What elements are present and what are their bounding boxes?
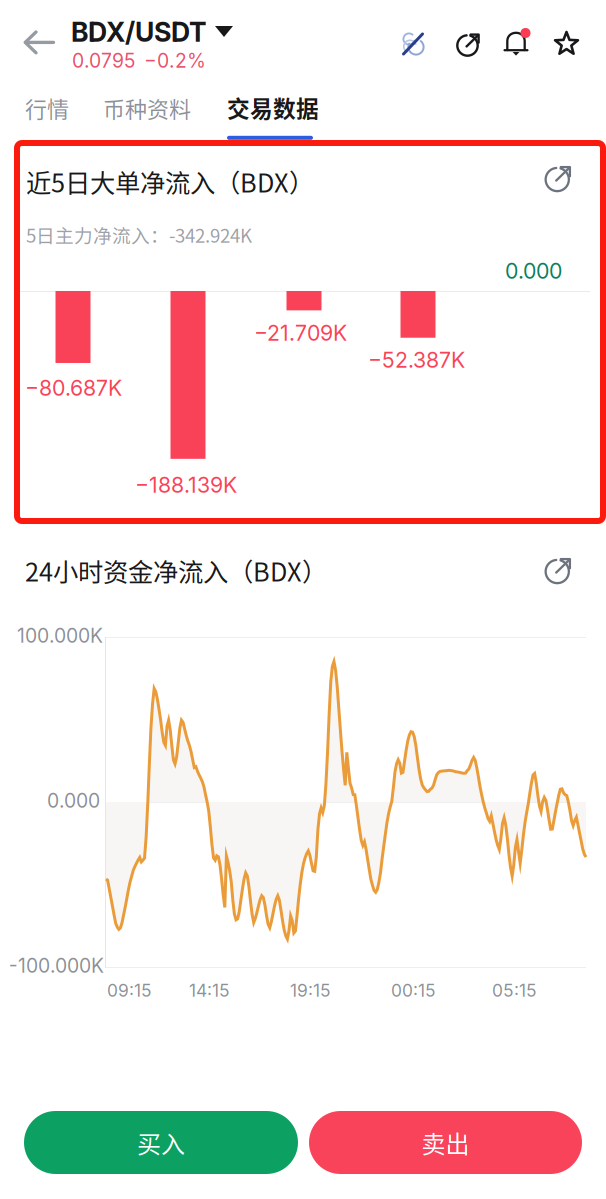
staticText: 币种资料 [103,92,191,124]
staticText: −80.687K [25,375,122,401]
staticText: 19:15 [290,980,331,1001]
staticText: 5日主力净流入：-342.924K [26,221,252,248]
button[interactable]: 币种资料 [103,92,191,124]
button[interactable]: 买入 [24,1111,298,1174]
staticText: −0.2% [144,49,206,72]
button[interactable]: Analysis [400,31,426,56]
staticText: 24小时资金净流入（BDX） [25,552,327,589]
staticText: 0.000 [505,258,562,284]
button[interactable]: Switch pair [215,26,233,37]
staticText: BDX/USDT [71,16,207,48]
staticText: 交易数据 [227,91,319,124]
staticText: 05:15 [492,980,537,1001]
staticText: 卖出 [421,1125,469,1160]
button[interactable]: 行情 [25,92,69,124]
button[interactable]: Share 5-day chart [543,163,571,191]
staticText: 买入 [137,1125,185,1160]
staticText: 0.0795 [72,49,135,72]
button[interactable]: Share 24-hour chart [543,555,571,583]
button[interactable]: 交易数据 [227,91,319,140]
button[interactable]: Back [23,30,56,55]
staticText: −52.387K [368,347,465,373]
staticText: 100.000K [17,624,103,647]
button[interactable]: Share [455,31,480,56]
staticText: −21.709K [254,320,347,346]
staticText: 行情 [25,92,69,124]
button[interactable]: Favorite [554,31,579,56]
button[interactable]: Price alert [504,30,529,56]
staticText: 00:15 [391,980,436,1001]
staticText: 09:15 [107,980,152,1001]
staticText: −188.139K [135,472,237,498]
staticText: 14:15 [189,980,230,1001]
button[interactable]: 卖出 [309,1111,582,1174]
staticText: -100.000K [9,954,104,977]
staticText: 0.000 [47,789,100,812]
staticText: 近5日大单净流入（BDX） [26,163,314,200]
